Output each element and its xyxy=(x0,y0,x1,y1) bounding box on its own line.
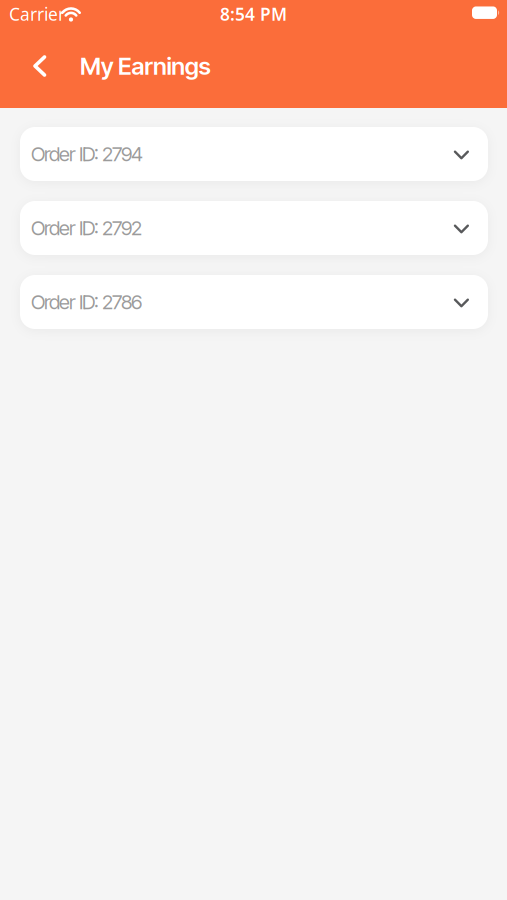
button[interactable]: Order ID: 2792 xyxy=(20,201,488,255)
button[interactable]: Order ID: 2786 xyxy=(20,275,488,329)
staticText: Order ID: 2786 xyxy=(31,290,142,314)
button[interactable]: Back xyxy=(0,55,55,76)
staticText: Order ID: 2794 xyxy=(31,142,143,166)
staticText: My Earnings xyxy=(80,51,210,80)
staticText: 8:54 PM xyxy=(220,2,287,25)
staticText: Order ID: 2792 xyxy=(31,216,142,240)
staticText: Carrier xyxy=(9,2,65,25)
button[interactable]: Order ID: 2794 xyxy=(20,127,488,181)
